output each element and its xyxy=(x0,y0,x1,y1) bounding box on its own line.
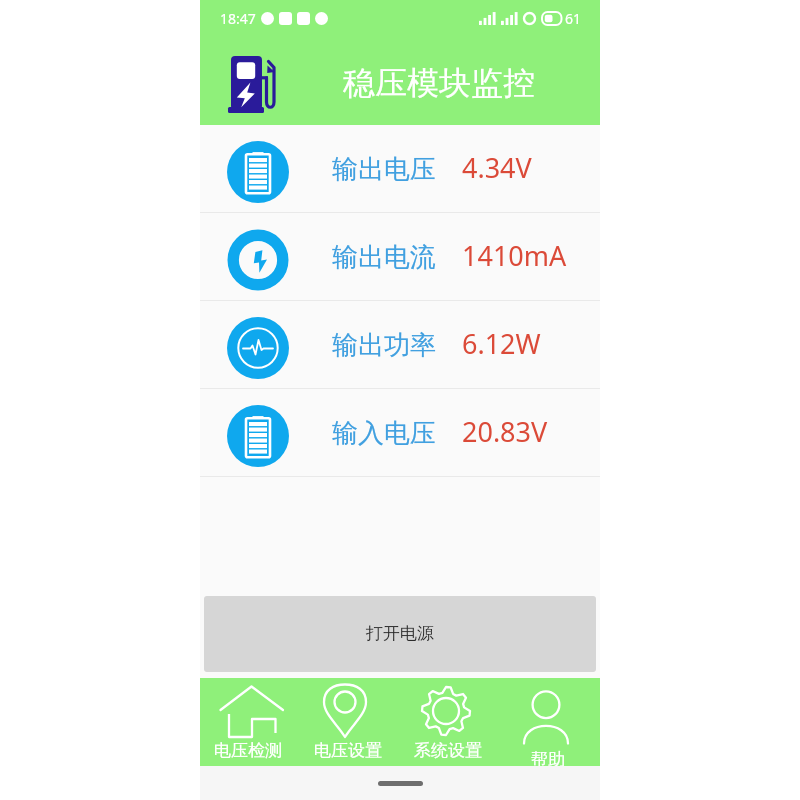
staticText: 电压设置 xyxy=(314,740,382,761)
button[interactable]: 帮助 xyxy=(500,678,600,766)
button[interactable]: 输出电流 xyxy=(200,213,600,300)
button[interactable]: 输入电压 xyxy=(200,389,600,476)
staticText: 输出电流 xyxy=(332,241,436,274)
button[interactable]: 输出功率 xyxy=(200,301,600,388)
staticText: 帮助 xyxy=(531,749,565,770)
button[interactable]: 系统设置 xyxy=(400,678,500,766)
staticText: 电压检测 xyxy=(214,740,282,761)
staticText: 系统设置 xyxy=(414,740,482,761)
staticText: 稳压模块监控 xyxy=(343,63,535,103)
staticText: 打开电源 xyxy=(366,623,434,644)
staticText: 6.12W xyxy=(462,325,541,362)
staticText: 18:47 xyxy=(220,9,256,28)
staticText: 1410mA xyxy=(462,237,567,274)
staticText: 20.83V xyxy=(462,413,548,450)
button[interactable]: 电压设置 xyxy=(300,678,400,766)
staticText: 输出电压 xyxy=(332,153,436,186)
button[interactable]: 电压检测 xyxy=(200,678,300,766)
staticText: 4.34V xyxy=(462,149,532,186)
button[interactable]: 打开电源 xyxy=(204,596,596,672)
staticText: 输出功率 xyxy=(332,329,436,362)
staticText: 输入电压 xyxy=(332,417,436,450)
button[interactable]: 输出电压 xyxy=(200,125,600,212)
staticText: 61 xyxy=(565,9,582,28)
